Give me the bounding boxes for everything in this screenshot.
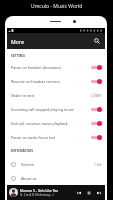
button[interactable]: About us bbox=[7, 172, 105, 184]
button[interactable]: Pause on headset disconnect bbox=[7, 60, 105, 74]
button[interactable]: Pause bbox=[85, 188, 92, 198]
staticText: Maroon 5 - Girls Like You bbox=[20, 188, 59, 192]
button[interactable]: Version bbox=[7, 156, 105, 172]
button[interactable]: Pause on audio focus lost bbox=[7, 130, 105, 144]
button[interactable]: Resume on headset connect bbox=[7, 74, 105, 88]
button[interactable]: Previous bbox=[75, 188, 82, 198]
button[interactable]: End call continue music playback bbox=[7, 116, 105, 130]
staticText: More bbox=[11, 38, 24, 45]
staticText: Resume on headset connect bbox=[11, 79, 91, 84]
staticText: 1.0.6 bbox=[94, 162, 102, 166]
button[interactable]: Next bbox=[95, 188, 102, 198]
button[interactable]: Search bbox=[89, 33, 105, 49]
staticText: INFOMATION bbox=[11, 148, 34, 152]
staticText: ft. Cardi B (Hidenway...) bbox=[20, 193, 54, 197]
staticText: SETTING bbox=[11, 53, 25, 57]
staticText: Umculo - Music World bbox=[31, 3, 83, 10]
staticText: Pause on audio focus lost bbox=[11, 135, 91, 140]
staticText: Incoming call stopped playing music bbox=[11, 107, 91, 112]
staticText: Version bbox=[21, 162, 34, 167]
staticText: End call continue music playback bbox=[11, 121, 91, 126]
staticText: About us bbox=[21, 176, 37, 181]
staticText: Shake to next bbox=[11, 93, 91, 98]
button[interactable]: Shake to next bbox=[7, 88, 105, 102]
button[interactable]: Incoming call stopped playing music bbox=[7, 102, 105, 116]
staticText: Pause on headset disconnect bbox=[11, 65, 91, 70]
